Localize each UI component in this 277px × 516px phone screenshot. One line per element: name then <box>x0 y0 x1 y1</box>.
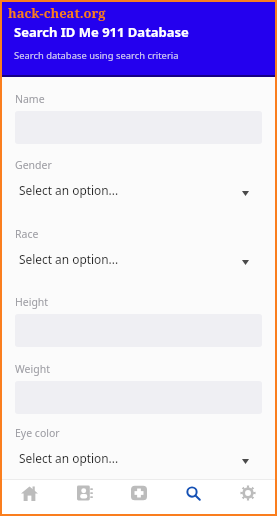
button[interactable]: Settings <box>220 480 275 514</box>
button[interactable]: Select an option... <box>15 444 262 470</box>
staticText: Search ID Me 911 Database <box>14 23 189 41</box>
staticText: hack-cheat.org <box>8 4 106 22</box>
staticText: Race <box>15 227 39 241</box>
staticText: Weight <box>15 362 50 376</box>
staticText: Gender <box>15 158 52 172</box>
staticText: Select an option... <box>19 450 119 466</box>
staticText: Select an option... <box>19 251 119 267</box>
staticText: Name <box>15 92 45 106</box>
staticText: Search database using search criteria <box>14 49 179 62</box>
staticText: Height <box>15 295 49 309</box>
button[interactable]: Search <box>165 480 220 514</box>
button[interactable]: Contacts <box>56 480 110 514</box>
staticText: Eye color <box>15 426 60 440</box>
button[interactable]: Select an option... <box>15 176 262 202</box>
button[interactable]: Select an option... <box>15 245 262 271</box>
button[interactable]: Home <box>2 480 56 514</box>
button[interactable]: Add <box>110 480 165 514</box>
staticText: Select an option... <box>19 182 119 198</box>
